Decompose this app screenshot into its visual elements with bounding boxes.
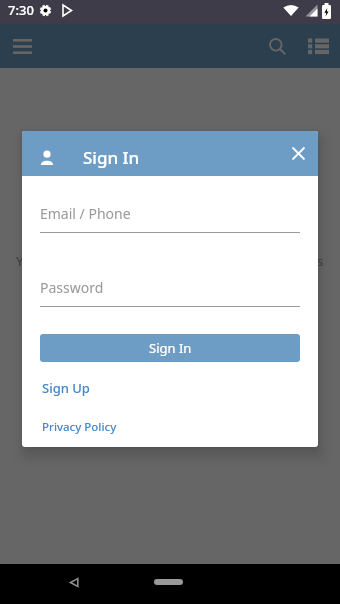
staticText: Sign Up [42, 379, 90, 397]
staticText: 7:30 [8, 1, 34, 19]
staticText: s [317, 252, 324, 270]
button[interactable] [276, 131, 318, 176]
button[interactable] [297, 24, 340, 68]
button[interactable]: Sign Up [42, 379, 90, 397]
staticText: Privacy Policy [42, 419, 117, 435]
button[interactable] [257, 24, 297, 68]
staticText: Sign In [83, 146, 140, 169]
button[interactable]: Email / Phone [40, 204, 300, 233]
staticText: Email / Phone [40, 204, 131, 223]
staticText: Sign In [149, 339, 192, 357]
button[interactable] [59, 571, 89, 594]
button[interactable] [1, 24, 43, 68]
staticText: Y [16, 252, 24, 270]
button[interactable]: Sign In [40, 334, 300, 362]
staticText: Password [40, 278, 104, 297]
button[interactable] [154, 579, 183, 585]
button[interactable]: Privacy Policy [42, 419, 117, 435]
button[interactable]: Password [40, 278, 300, 307]
